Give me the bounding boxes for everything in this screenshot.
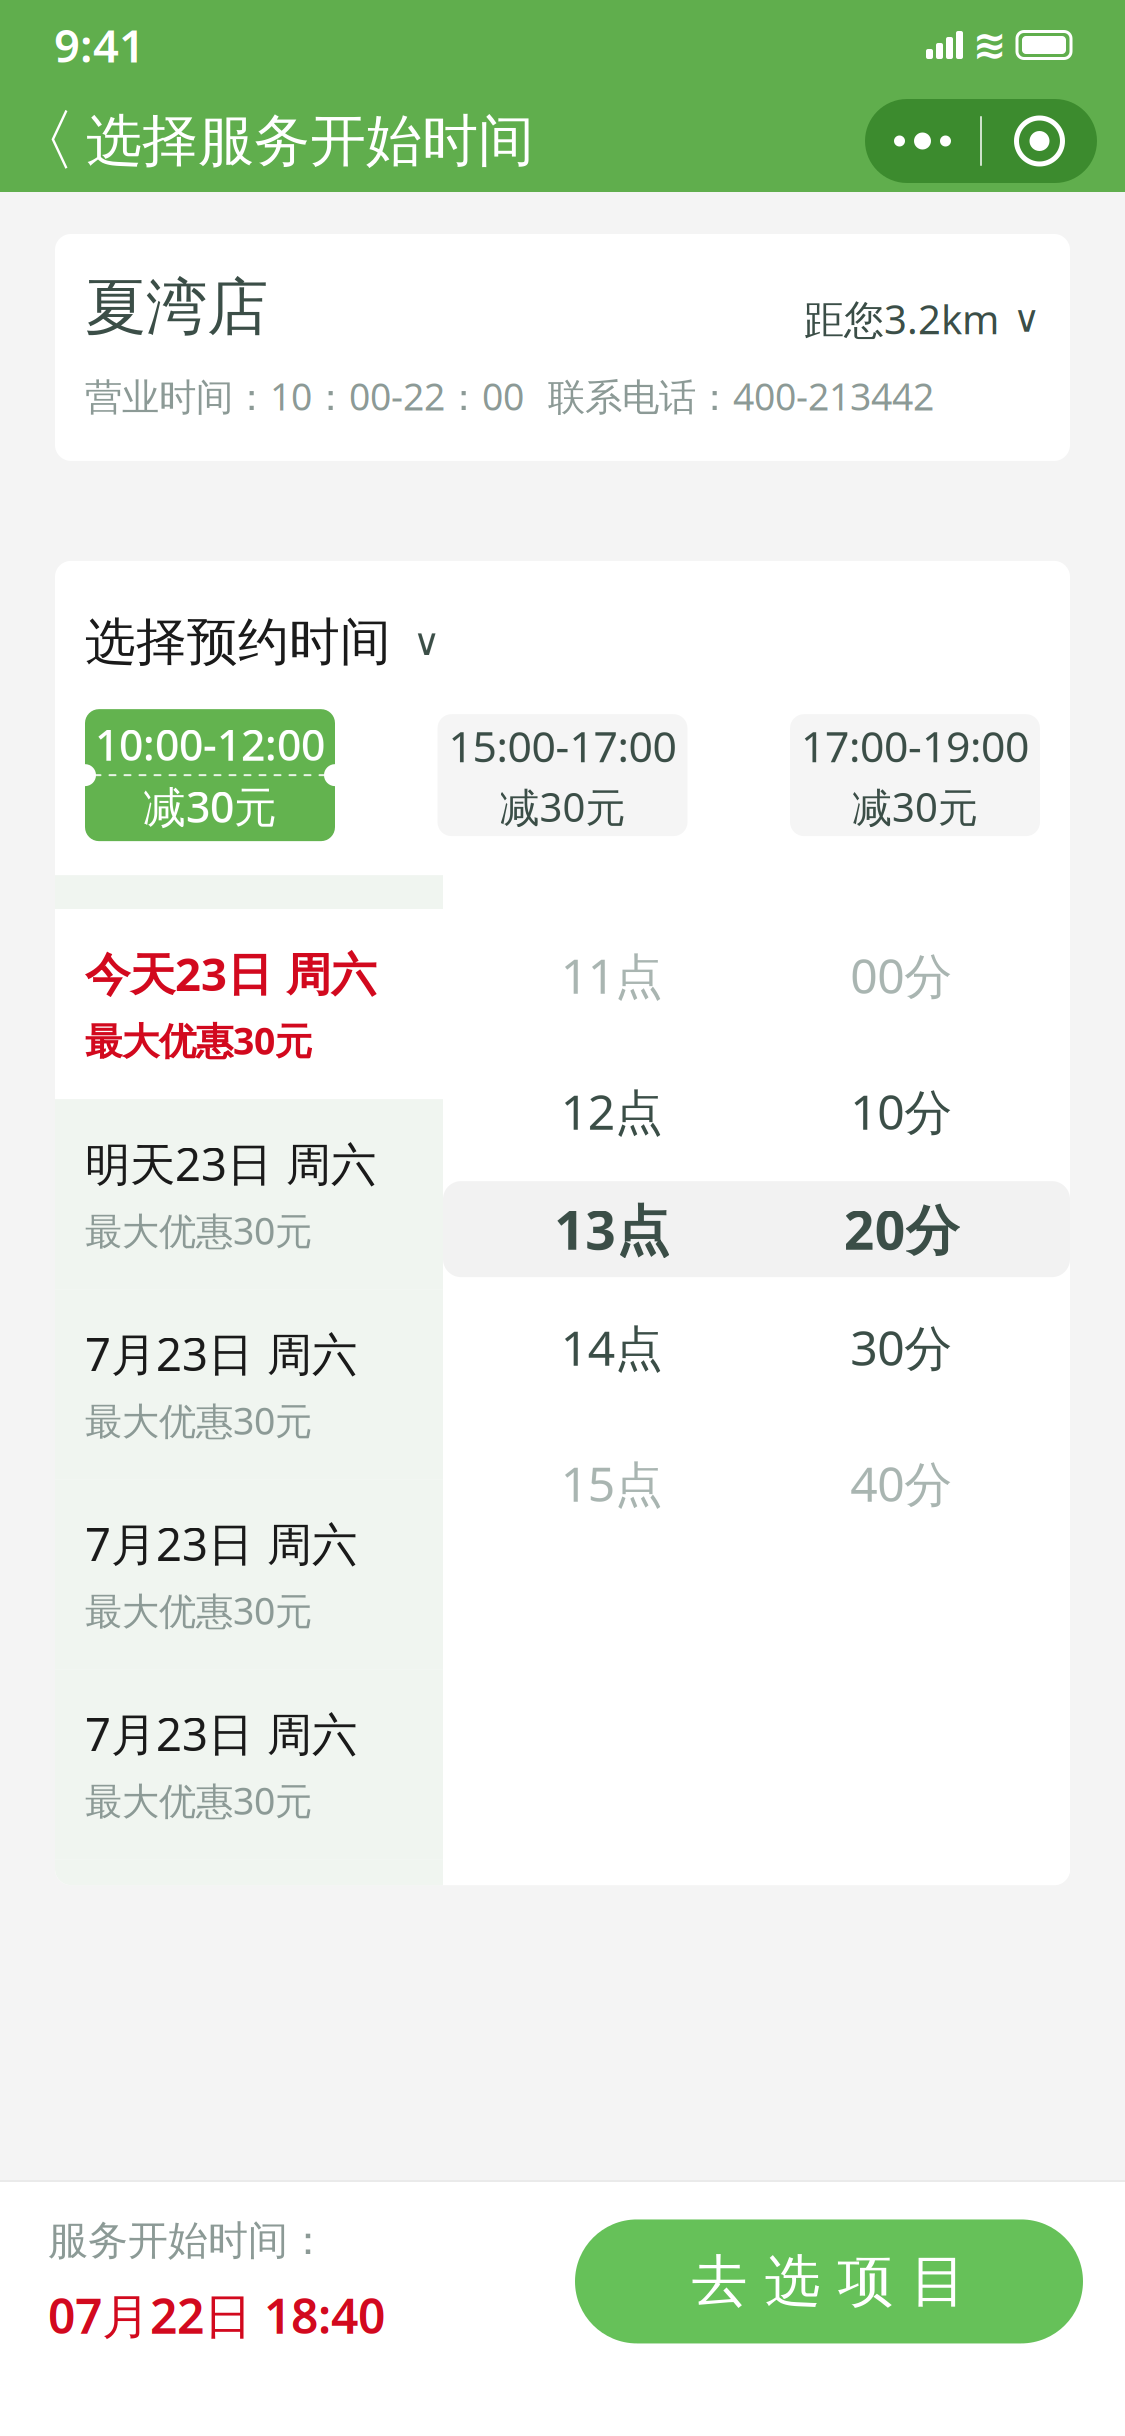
button[interactable]: 13点 [443, 1181, 1070, 1277]
staticText: ≋ [973, 22, 1007, 68]
staticText: 20分 [844, 1194, 959, 1264]
button[interactable]: 距您3.2km [804, 292, 1040, 345]
staticText: 去 选 项 目 [691, 2247, 966, 2316]
staticText: 9:41 [54, 15, 145, 75]
button[interactable]: 7月23日 周六 [55, 1289, 443, 1479]
staticText: 明天23日 周六 [85, 1133, 376, 1193]
staticText: 选择服务开始时间 [86, 107, 534, 175]
staticText: 最大优惠30元 [85, 1015, 312, 1065]
button[interactable]: 7月23日 周六 [55, 1479, 443, 1669]
button[interactable]: 更多 [865, 99, 980, 183]
staticText: 15点 [561, 1451, 663, 1515]
staticText: 夏湾店 [85, 270, 268, 345]
staticText: 17:00-19:00 [801, 717, 1029, 774]
button[interactable]: 明天23日 周六 [55, 1099, 443, 1289]
staticText: 选择预约时间 [85, 611, 391, 673]
staticText: 〈 [9, 100, 76, 182]
staticText: 40分 [850, 1451, 952, 1515]
staticText: 最大优惠30元 [85, 1205, 312, 1255]
button[interactable]: 今天23日 周六 [55, 909, 443, 1099]
staticText: 13点 [554, 1194, 669, 1264]
staticText: 30分 [850, 1315, 952, 1379]
staticText: 减30元 [852, 780, 978, 833]
staticText: ∨ [1013, 298, 1040, 340]
button[interactable]: 返回 [0, 98, 86, 184]
staticText: 07月22日 18:40 [48, 2283, 385, 2347]
staticText: 15:00-17:00 [448, 717, 676, 774]
staticText: 最大优惠30元 [85, 1395, 312, 1445]
staticText: 7月23日 周六 [85, 1703, 357, 1763]
staticText: 减30元 [499, 780, 625, 833]
button[interactable]: 11点 [443, 927, 1070, 1023]
button[interactable]: 17:00-19:00 [790, 714, 1040, 836]
staticText: 最大优惠30元 [85, 1775, 312, 1825]
button[interactable]: 去 选 项 目 [575, 2219, 1083, 2343]
button[interactable]: 选择预约时间 [55, 561, 1070, 709]
staticText: 最大优惠30元 [85, 1585, 312, 1635]
staticText: 11点 [561, 943, 663, 1007]
staticText: 今天23日 周六 [85, 943, 376, 1003]
staticText: ∨ [413, 621, 440, 663]
staticText: 00分 [850, 943, 952, 1007]
button[interactable]: 10:00-12:00 [85, 709, 335, 841]
staticText: 7月23日 周六 [85, 1323, 357, 1383]
button[interactable]: 15点 [443, 1435, 1070, 1531]
staticText: 减30元 [143, 778, 277, 834]
staticText: 营业时间：10：00-22：00 [85, 371, 524, 421]
staticText: 联系电话：400-213442 [548, 371, 934, 421]
button[interactable]: 15:00-17:00 [437, 714, 687, 836]
button[interactable]: 12点 [443, 1063, 1070, 1159]
staticText: 距您3.2km [804, 292, 999, 345]
staticText: 服务开始时间： [48, 2216, 328, 2265]
staticText: 7月23日 周六 [85, 1513, 357, 1573]
staticText: 10分 [850, 1079, 952, 1143]
button[interactable]: 7月23日 周六 [55, 1669, 443, 1859]
staticText: 14点 [561, 1315, 663, 1379]
button[interactable]: 14点 [443, 1299, 1070, 1395]
button[interactable]: 关闭 [982, 99, 1097, 183]
staticText: 10:00-12:00 [95, 716, 325, 772]
staticText: 12点 [561, 1079, 663, 1143]
